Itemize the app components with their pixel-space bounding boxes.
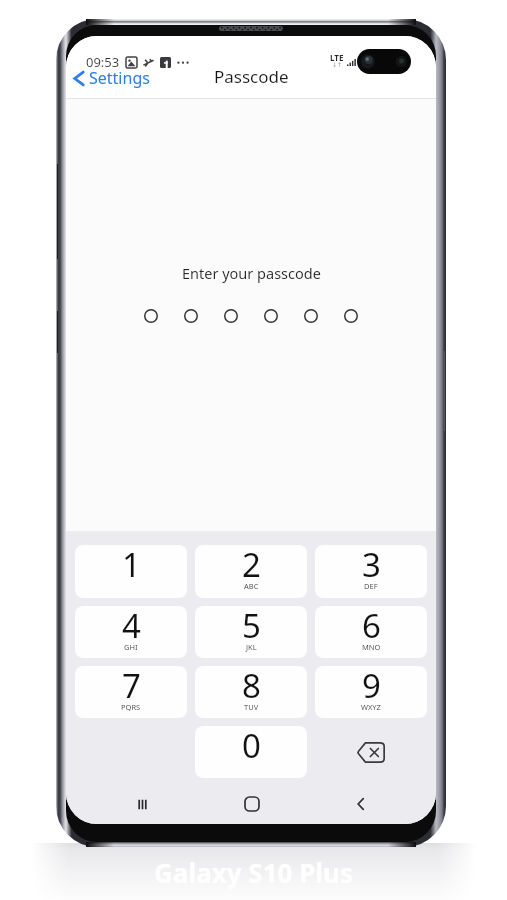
button[interactable]: Back — [306, 784, 415, 824]
staticText: TUV — [244, 702, 259, 712]
button[interactable]: 9 — [315, 666, 427, 718]
button[interactable]: 5 — [195, 606, 307, 658]
button[interactable]: Home — [197, 784, 306, 824]
staticText: MNO — [362, 642, 381, 652]
button[interactable]: Recents — [87, 784, 197, 824]
staticText: 4 — [122, 606, 141, 648]
button[interactable]: Delete — [315, 726, 427, 778]
staticText: 6 — [362, 606, 381, 648]
staticText: ABC — [244, 581, 259, 591]
staticText: LTE — [330, 52, 344, 63]
button[interactable]: 8 — [195, 666, 307, 718]
staticText: 9 — [362, 666, 381, 708]
button[interactable]: Settings — [67, 64, 154, 92]
button[interactable]: 3 — [315, 545, 427, 598]
staticText: Enter your passcode — [182, 263, 321, 283]
staticText: 09:53 — [86, 53, 120, 71]
button[interactable]: 4 — [75, 606, 187, 658]
button[interactable]: 7 — [75, 666, 187, 718]
staticText: DEF — [364, 581, 378, 591]
staticText: 1 — [122, 545, 141, 587]
button[interactable]: 0 — [195, 726, 307, 778]
staticText: 8 — [242, 666, 261, 708]
button[interactable]: 1 — [75, 545, 187, 598]
staticText: ↓↑ — [332, 61, 343, 68]
staticText: PQRS — [121, 702, 141, 712]
staticText: 3 — [362, 545, 381, 587]
staticText: Passcode — [214, 65, 289, 88]
staticText: JKL — [246, 642, 257, 652]
staticText: 2 — [242, 545, 261, 587]
staticText: WXYZ — [361, 702, 381, 712]
staticText: Galaxy S10 Plus — [154, 855, 354, 890]
staticText: 7 — [122, 666, 141, 708]
staticText: Settings — [89, 67, 150, 89]
button[interactable]: 2 — [195, 545, 307, 598]
staticText: 0 — [242, 726, 261, 768]
button[interactable]: 6 — [315, 606, 427, 658]
staticText: GHI — [124, 642, 138, 652]
staticText: 5 — [242, 606, 261, 648]
